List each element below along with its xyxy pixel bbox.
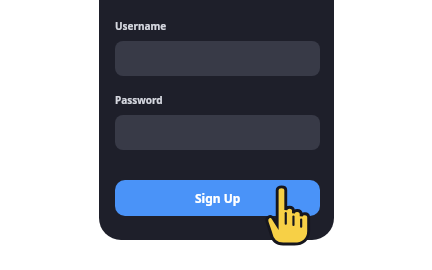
staticText: Password xyxy=(115,93,163,107)
button[interactable]: Sign Up xyxy=(115,180,320,216)
staticText: Username xyxy=(115,19,167,33)
staticText: Sign Up xyxy=(195,190,241,206)
